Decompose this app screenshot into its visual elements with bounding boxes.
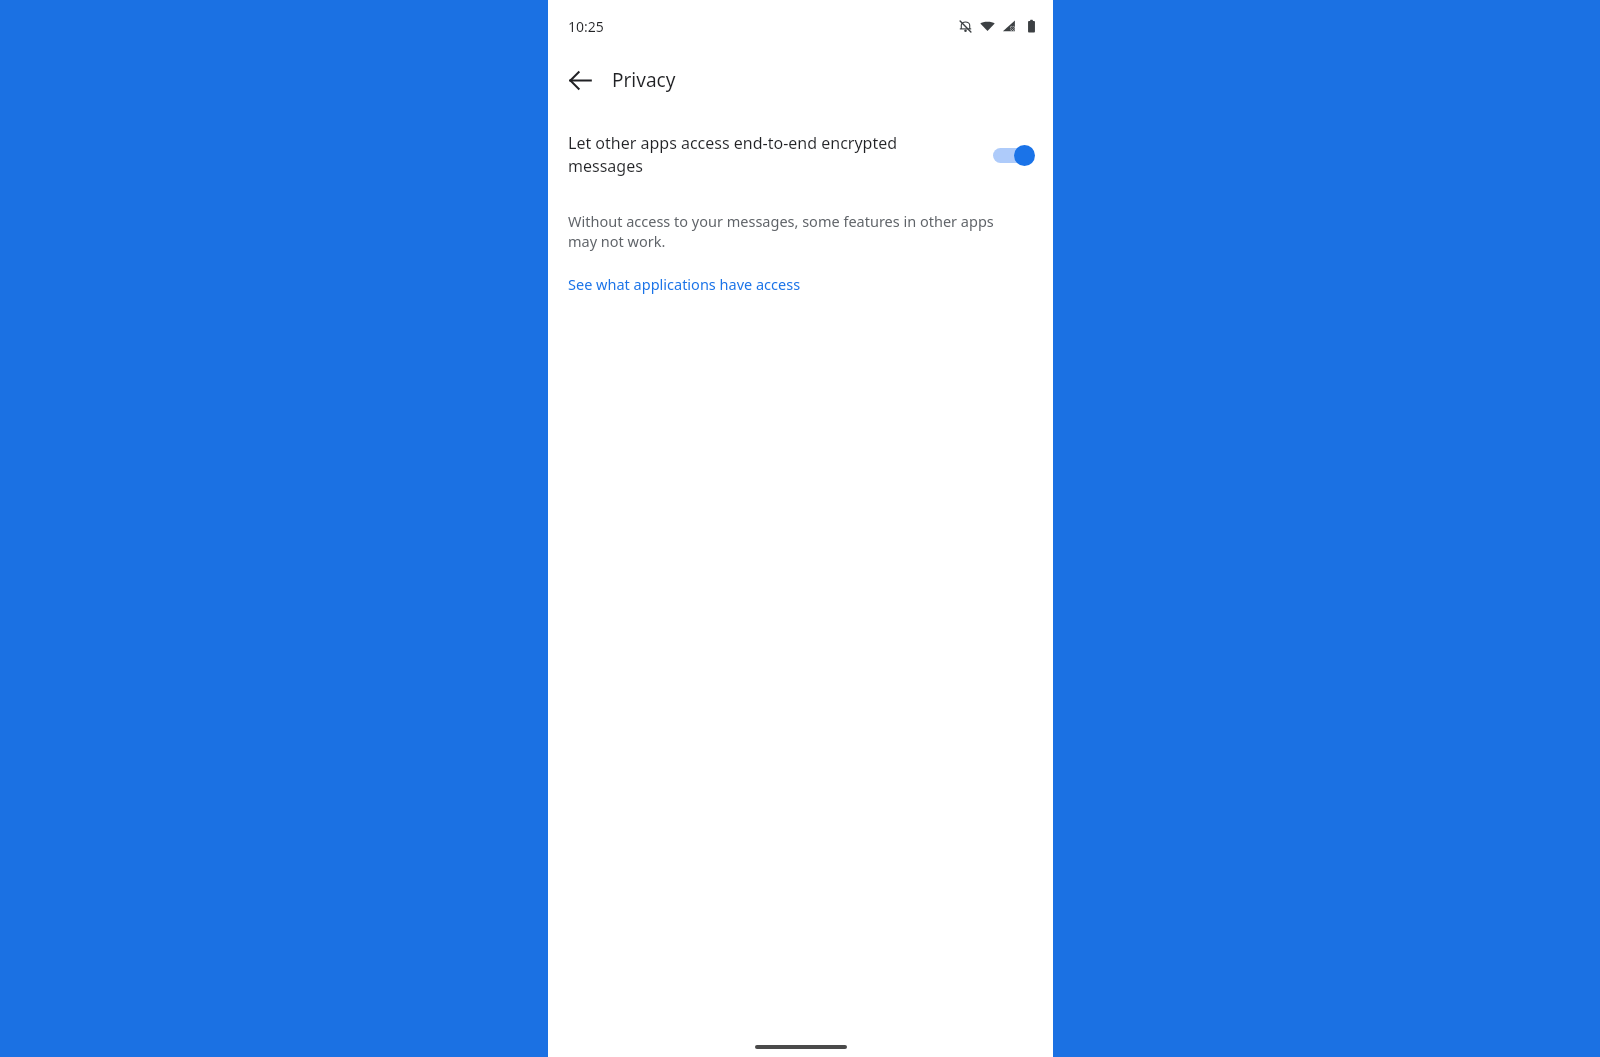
- button[interactable]: See what applications have access: [568, 274, 801, 294]
- staticText: Without access to your messages, some fe…: [568, 211, 1017, 252]
- staticText: Privacy: [612, 67, 676, 93]
- button[interactable]: Let other apps access end-to-end encrypt…: [548, 128, 1053, 181]
- staticText: 10:25: [568, 17, 604, 36]
- button[interactable]: Toggle end-to-end encrypted message acce…: [989, 140, 1035, 170]
- button[interactable]: Back: [558, 58, 602, 102]
- staticText: Let other apps access end-to-end encrypt…: [568, 132, 975, 177]
- staticText: See what applications have access: [568, 274, 801, 294]
